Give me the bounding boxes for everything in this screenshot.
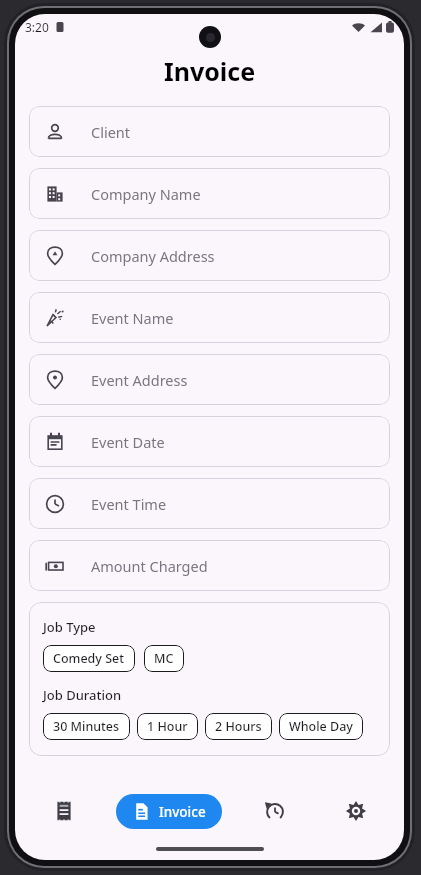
staticText: 3:20 [25,19,49,35]
button[interactable]: Event Address [29,354,390,405]
button[interactable]: Event Date [29,416,390,467]
button[interactable]: Company Address [29,230,390,281]
button[interactable]: Event Time [29,478,390,529]
staticText: Job Type [43,618,96,636]
button[interactable]: Invoice [116,794,222,829]
staticText: Job Duration [43,686,122,704]
staticText: Amount Charged [91,556,208,576]
button[interactable]: Client [29,106,390,157]
staticText: Event Date [91,432,165,452]
staticText: Company Address [91,246,215,266]
button[interactable]: Comedy Set [43,645,135,672]
staticText: Invoice [159,803,206,821]
staticText: Whole Day [289,718,353,735]
button[interactable]: Whole Day [279,713,363,740]
button[interactable]: Event Name [29,292,390,343]
staticText: 30 Minutes [53,718,120,735]
staticText: MC [154,650,174,667]
button[interactable]: Receipts [23,784,104,838]
staticText: Client [91,122,131,142]
staticText: Event Time [91,494,167,514]
button[interactable]: MC [144,645,184,672]
button[interactable]: Amount Charged [29,540,390,591]
staticText: 1 Hour [147,718,188,735]
staticText: Event Address [91,370,188,390]
button[interactable]: Company Name [29,168,390,219]
staticText: 2 Hours [215,718,262,735]
staticText: Invoice [15,54,404,88]
staticText: Company Name [91,184,201,204]
staticText: Comedy Set [53,650,125,667]
button[interactable]: 1 Hour [137,713,198,740]
button[interactable]: 30 Minutes [43,713,130,740]
staticText: Event Name [91,308,174,328]
button[interactable]: Settings [315,784,396,838]
button[interactable]: 2 Hours [205,713,272,740]
button[interactable]: History [234,784,315,838]
